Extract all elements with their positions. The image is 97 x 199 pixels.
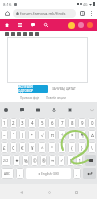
button[interactable]: {	[68, 142, 76, 153]
button[interactable]: √	[38, 130, 46, 140]
staticText: \	[91, 145, 93, 151]
button[interactable]: Прикачи фајл	[20, 96, 40, 100]
staticText: |	[21, 132, 24, 138]
button[interactable]: Format 1	[11, 32, 15, 36]
button[interactable]: 4	[28, 118, 36, 128]
button[interactable]: Format 5	[35, 32, 39, 36]
button[interactable]: \	[88, 142, 96, 153]
staticText: ®	[42, 158, 46, 164]
button[interactable]: Format 4	[29, 32, 33, 36]
button[interactable]: 9	[78, 118, 86, 128]
button[interactable]: Home	[2, 8, 13, 19]
button[interactable]: π	[48, 130, 56, 140]
staticText: 4G	[83, 2, 88, 7]
button[interactable]: ©	[31, 155, 38, 166]
button[interactable]: Keyboard tool 0	[2, 106, 10, 114]
button[interactable]: €	[19, 142, 26, 153]
staticText: ,	[19, 171, 21, 177]
staticText: 8:16	[3, 1, 12, 7]
button[interactable]	[7, 37, 88, 83]
button[interactable]: Menu	[16, 21, 24, 29]
button[interactable]: forum.famosa.mk/finds	[13, 9, 76, 18]
button[interactable]: Keyboard tool 1	[18, 106, 26, 114]
button[interactable]: Search	[42, 21, 50, 29]
button[interactable]: Home	[3, 21, 11, 29]
staticText: [	[70, 158, 72, 164]
button[interactable]: Backspace	[85, 155, 96, 166]
button[interactable]: 0	[88, 118, 96, 128]
button[interactable]: 8	[68, 118, 76, 128]
button[interactable]: ¥	[28, 142, 36, 153]
staticText: ¥	[31, 145, 34, 151]
button[interactable]: ABC	[1, 168, 14, 179]
button[interactable]: 2	[10, 118, 17, 128]
button[interactable]: Messages	[78, 22, 84, 28]
button[interactable]: Home	[43, 186, 55, 198]
staticText: {	[71, 145, 73, 151]
button[interactable]: ™	[49, 155, 56, 166]
button[interactable]: ®	[40, 155, 47, 166]
button[interactable]: ¢	[10, 142, 17, 153]
button[interactable]: Notifications	[87, 22, 93, 28]
staticText: £	[3, 145, 6, 151]
staticText: `	[13, 132, 15, 138]
button[interactable]: •	[28, 130, 36, 140]
button[interactable]: Posts	[29, 21, 37, 29]
button[interactable]: Повеќе опции	[46, 96, 66, 100]
button[interactable]: Format 0	[5, 32, 9, 36]
button[interactable]: Tabs	[78, 9, 87, 18]
button[interactable]: 2/2	[1, 155, 11, 166]
staticText: ]	[79, 158, 81, 164]
staticText: 9	[81, 120, 84, 126]
button[interactable]: }	[78, 142, 86, 153]
staticText: forum.famosa.mk/finds	[20, 11, 66, 17]
button[interactable]: ]	[76, 155, 83, 166]
button[interactable]: 6	[48, 118, 56, 128]
button[interactable]: ,	[16, 168, 24, 179]
button[interactable]: Format 3	[23, 32, 27, 36]
button[interactable]: ¶	[78, 130, 86, 140]
staticText: 5	[41, 120, 44, 126]
staticText: }	[81, 145, 83, 151]
button[interactable]: 5	[38, 118, 46, 128]
button[interactable]: 1	[1, 118, 8, 128]
button[interactable]: `	[10, 130, 17, 140]
button[interactable]: Space	[26, 168, 71, 179]
button[interactable]: .	[73, 168, 81, 179]
button[interactable]: Recents	[70, 186, 82, 198]
button[interactable]: Keyboard tool 4	[66, 106, 74, 114]
button[interactable]: ∆	[88, 130, 96, 140]
button[interactable]: |	[19, 130, 26, 140]
button[interactable]: ИСПРАТИ ОДГОВОР	[18, 85, 48, 93]
button[interactable]: Format 2	[17, 32, 21, 36]
button[interactable]: ✓	[58, 155, 65, 166]
button[interactable]: £	[1, 142, 8, 153]
staticText: π	[51, 132, 54, 138]
button[interactable]: More options	[87, 9, 96, 18]
button[interactable]: Back	[15, 186, 27, 198]
button[interactable]: ^	[38, 142, 46, 153]
button[interactable]: ÷	[58, 130, 66, 140]
staticText: Повеќе опции	[46, 96, 66, 100]
button[interactable]: =	[58, 142, 66, 153]
button[interactable]: Keyboard tool 2	[34, 106, 42, 114]
button[interactable]: °	[48, 142, 56, 153]
button[interactable]: %	[22, 155, 29, 166]
button[interactable]: ★	[13, 155, 20, 166]
button[interactable]: ~	[1, 130, 8, 140]
button[interactable]: Collapse keyboard	[88, 106, 96, 114]
staticText: Прикачи фајл	[20, 96, 40, 100]
button[interactable]: Profile	[68, 22, 75, 29]
button[interactable]: ×	[68, 130, 76, 140]
button[interactable]: 3	[19, 118, 26, 128]
button[interactable]: Keyboard tool 3	[50, 106, 58, 114]
button[interactable]: [	[67, 155, 74, 166]
button[interactable]: Enter	[83, 168, 96, 179]
staticText: ✓	[60, 158, 64, 163]
button[interactable]: ЗАЧУВАЈ ЦИТАТ	[52, 87, 76, 91]
staticText: ×	[71, 132, 74, 138]
button[interactable]: 7	[58, 118, 66, 128]
staticText: ^	[41, 145, 44, 151]
staticText: ABC	[4, 172, 11, 176]
staticText: English (UK)	[41, 172, 59, 176]
